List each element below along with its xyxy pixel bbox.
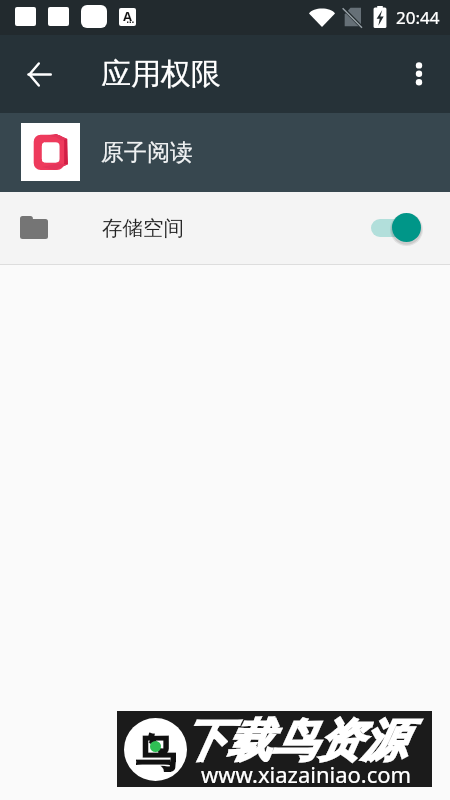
- button[interactable]: 存储空间: [0, 192, 450, 264]
- staticText: 20:44: [396, 6, 440, 29]
- button[interactable]: Storage permission enabled: [368, 213, 424, 243]
- button[interactable]: More options: [398, 53, 440, 95]
- staticText: 原子阅读: [101, 138, 193, 167]
- staticText: 下载鸟资源: [181, 713, 406, 770]
- staticText: 鸟: [136, 728, 176, 772]
- staticText: A: [123, 8, 132, 23]
- staticText: 存储空间: [102, 215, 184, 241]
- staticText: 应用权限: [101, 55, 221, 93]
- button[interactable]: Back: [18, 53, 60, 95]
- button[interactable]: 原子阅读: [0, 113, 450, 192]
- staticText: www.xiazainiao.com: [201, 759, 412, 789]
